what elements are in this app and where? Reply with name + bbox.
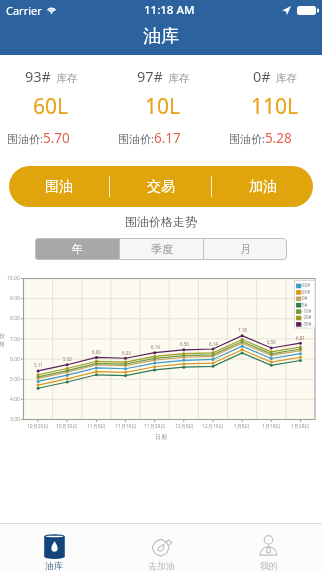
button[interactable]: 我的: [215, 524, 322, 572]
button[interactable]: 交易: [110, 166, 211, 207]
staticText: 7.00: [10, 336, 20, 343]
staticText: 7.18: [238, 327, 247, 333]
staticText: 5.32: [63, 356, 72, 362]
staticText: -35#: [302, 321, 312, 327]
staticText: 围油价:6.17: [118, 129, 181, 147]
staticText: 8.00: [10, 315, 20, 322]
staticText: 3.00: [10, 416, 20, 423]
staticText: 4.00: [10, 396, 20, 403]
staticText: 围油: [45, 178, 73, 196]
staticText: 1月18日: [262, 423, 281, 430]
staticText: 1月8日: [234, 423, 250, 430]
button[interactable]: 加油: [212, 166, 313, 207]
staticText: 0# 库存: [253, 66, 298, 86]
staticText: 10月30日: [56, 423, 78, 430]
staticText: 我的: [260, 560, 278, 571]
staticText: 10.00: [7, 275, 20, 282]
staticText: 0#: [302, 295, 308, 301]
staticText: 5.11: [34, 362, 43, 368]
staticText: 11月29日: [144, 423, 166, 430]
staticText: 93#: [302, 282, 311, 288]
staticText: 6.00: [92, 349, 101, 355]
button[interactable]: 油库: [0, 524, 108, 572]
staticText: 加油: [249, 178, 277, 196]
staticText: 12月19日: [202, 423, 224, 430]
button[interactable]: 去加油: [108, 524, 215, 572]
staticText: 价: [0, 332, 5, 340]
staticText: 油库: [143, 25, 179, 48]
staticText: 6.50: [180, 341, 189, 347]
staticText: 10L: [145, 92, 181, 121]
staticText: 12月9日: [175, 423, 194, 430]
staticText: 9.00: [10, 295, 20, 302]
staticText: 11月9日: [87, 423, 106, 430]
staticText: 10月20日: [27, 423, 49, 430]
staticText: 60L: [33, 92, 69, 121]
staticText: 6.56: [267, 339, 276, 345]
staticText: 97#: [302, 289, 311, 295]
staticText: 5.00: [10, 376, 20, 383]
staticText: 1月28日: [291, 423, 310, 430]
staticText: -20#: [302, 314, 312, 320]
staticText: 去加油: [148, 560, 175, 571]
button[interactable]: 月: [204, 238, 287, 260]
staticText: 6.03: [122, 350, 131, 356]
staticText: 月: [240, 242, 251, 256]
staticText: 格: [0, 340, 5, 348]
button[interactable]: 围油: [9, 166, 109, 207]
staticText: 油库: [45, 560, 63, 571]
staticText: -10#: [302, 308, 312, 314]
staticText: 围油价:5.70: [7, 129, 70, 147]
staticText: 11:18 AM: [144, 2, 195, 18]
button[interactable]: 年: [35, 238, 119, 260]
staticText: 围油价:5.28: [229, 129, 292, 147]
staticText: 年: [72, 242, 83, 256]
staticText: 110L: [251, 92, 299, 121]
staticText: 6.81: [296, 335, 305, 341]
staticText: 11月19日: [115, 423, 137, 430]
staticText: 97# 库存: [137, 66, 190, 86]
staticText: 围油价格走势: [0, 214, 322, 229]
button[interactable]: 季度: [120, 238, 203, 260]
staticText: 日期: [155, 433, 167, 441]
staticText: 季度: [151, 242, 173, 256]
staticText: Carrier: [6, 3, 42, 18]
staticText: 6.00: [10, 356, 20, 363]
staticText: 93# 库存: [25, 66, 78, 86]
staticText: 5#: [302, 302, 308, 308]
staticText: 6.14: [151, 344, 160, 350]
staticText: 6.14: [209, 341, 218, 347]
staticText: 交易: [147, 178, 175, 196]
